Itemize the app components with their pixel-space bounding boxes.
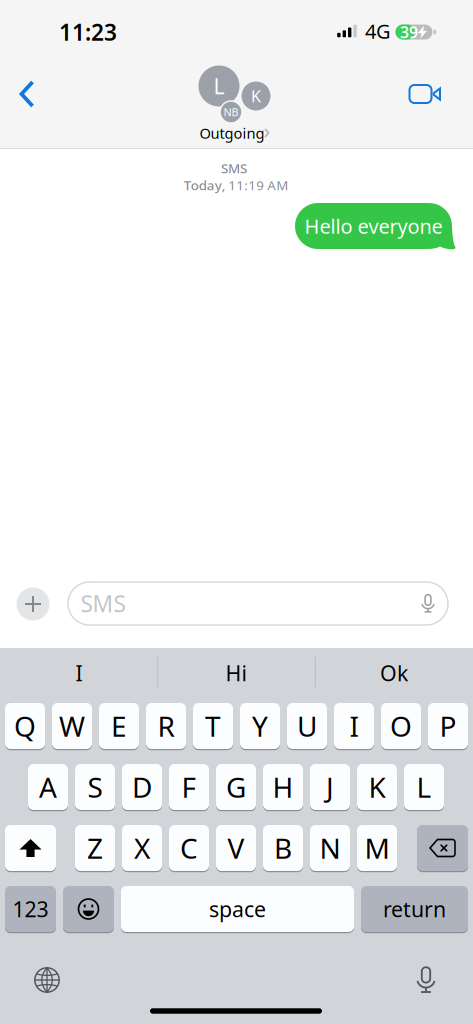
button[interactable] [417, 824, 468, 872]
staticText: V [227, 829, 244, 867]
staticText: Y [252, 707, 268, 745]
button[interactable] [409, 960, 443, 1000]
staticText: M [364, 829, 389, 867]
staticText: SMS [80, 588, 125, 618]
button[interactable]: space [121, 885, 354, 933]
staticText: Q [14, 707, 36, 745]
staticText: A [39, 768, 57, 806]
staticText: T [205, 707, 221, 745]
staticText: S [87, 768, 102, 806]
button[interactable]: Hi [161, 653, 311, 693]
staticText: return [383, 895, 446, 923]
button[interactable]: L [404, 763, 444, 811]
staticText: I [75, 659, 82, 687]
staticText: K [368, 768, 385, 806]
staticText: space [209, 895, 266, 923]
staticText: U [297, 707, 317, 745]
button[interactable]: K [357, 763, 397, 811]
staticText: 39 [400, 21, 418, 43]
staticText: L [213, 72, 224, 100]
button[interactable]: R [146, 702, 186, 750]
button[interactable]: E [99, 702, 139, 750]
staticText: W [59, 707, 85, 745]
staticText: L [416, 768, 431, 806]
staticText: Hello everyone [304, 213, 442, 239]
staticText: Ok [380, 659, 408, 687]
staticText: Z [87, 829, 103, 867]
button[interactable]: Ok [319, 653, 469, 693]
staticText: 4G [365, 18, 391, 44]
button[interactable]: SMS [68, 582, 448, 625]
staticText: B [274, 829, 292, 867]
button[interactable]: N [310, 824, 350, 872]
staticText: 11:19 AM [228, 176, 288, 194]
staticText: E [111, 707, 127, 745]
button[interactable]: I [334, 702, 374, 750]
button[interactable]: M [357, 824, 397, 872]
staticText: 123 [12, 895, 48, 923]
staticText: H [272, 768, 293, 806]
staticText: D [132, 768, 152, 806]
button[interactable]: J [310, 763, 350, 811]
button[interactable]: C [169, 824, 209, 872]
button[interactable]: H [263, 763, 303, 811]
button[interactable]: O [381, 702, 421, 750]
staticText: J [326, 768, 334, 806]
button[interactable]: L [188, 64, 284, 154]
staticText: R [157, 707, 174, 745]
staticText: K [251, 85, 261, 107]
button[interactable]: return [361, 885, 468, 933]
button[interactable]: B [263, 824, 303, 872]
button[interactable]: W [52, 702, 92, 750]
staticText: Today, [184, 176, 226, 194]
button[interactable] [5, 72, 49, 116]
button[interactable] [25, 958, 69, 1002]
button[interactable]: U [287, 702, 327, 750]
button[interactable]: A [28, 763, 68, 811]
button[interactable] [16, 587, 49, 620]
button[interactable]: Z [75, 824, 115, 872]
staticText: Hi [225, 659, 247, 687]
staticText: O [390, 707, 412, 745]
staticText: NB [223, 105, 238, 119]
staticText: N [319, 829, 340, 867]
button[interactable]: I [4, 653, 154, 693]
button[interactable]: S [75, 763, 115, 811]
button[interactable] [63, 885, 114, 933]
staticText: 11:23 [59, 17, 117, 47]
button[interactable] [398, 74, 454, 114]
staticText: F [181, 768, 196, 806]
staticText: Outgoing [199, 123, 264, 143]
button[interactable]: Q [5, 702, 45, 750]
button[interactable]: X [122, 824, 162, 872]
button[interactable]: G [216, 763, 256, 811]
button[interactable]: D [122, 763, 162, 811]
button[interactable]: T [193, 702, 233, 750]
button[interactable]: F [169, 763, 209, 811]
staticText: G [226, 768, 246, 806]
button[interactable]: 123 [5, 885, 56, 933]
staticText: X [134, 829, 150, 867]
staticText: I [349, 707, 358, 745]
staticText: SMS [221, 159, 247, 177]
staticText: C [180, 829, 198, 867]
button[interactable]: Y [240, 702, 280, 750]
staticText: P [439, 707, 456, 745]
button[interactable] [5, 824, 56, 872]
button[interactable]: V [216, 824, 256, 872]
button[interactable]: P [428, 702, 468, 750]
